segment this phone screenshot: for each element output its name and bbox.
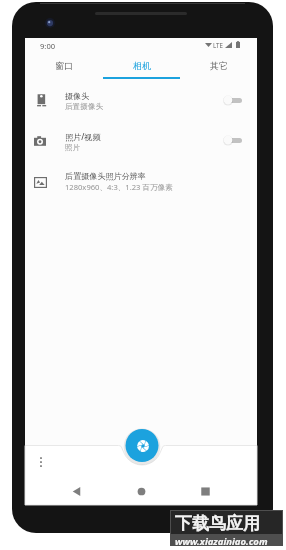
staticText: 摄像头	[65, 91, 90, 101]
button[interactable]: Toggle	[219, 90, 247, 110]
staticText: 窗口	[55, 60, 73, 71]
staticText: 9:00	[40, 41, 56, 51]
button[interactable]: Back	[65, 480, 87, 502]
button[interactable]: 相机	[103, 53, 180, 77]
button[interactable]: 摄像头	[25, 86, 257, 118]
button[interactable]: 后置摄像头照片分辨率	[25, 166, 257, 198]
staticText: 1280x960、4:3、1.23 百万像素	[65, 182, 173, 192]
staticText: 照片/视频	[65, 131, 101, 142]
button[interactable]: 其它	[180, 53, 257, 77]
button[interactable]: Home	[130, 480, 152, 502]
staticText: 照片	[65, 143, 81, 153]
button[interactable]: Recents	[194, 480, 216, 502]
staticText: 后置摄像头照片分辨率	[65, 171, 146, 181]
staticText: 后置摄像头	[65, 102, 103, 112]
button[interactable]: Toggle	[219, 130, 247, 150]
button[interactable]: Capture photo	[126, 429, 159, 462]
button[interactable]: 窗口	[25, 53, 103, 77]
staticText: www.xiazainiao.com	[175, 535, 268, 548]
staticText: 下载鸟应用	[175, 513, 260, 534]
staticText: 其它	[210, 60, 228, 71]
button[interactable]: More options	[31, 452, 51, 472]
button[interactable]: 照片/视频	[25, 126, 257, 158]
staticText: LTE	[213, 41, 223, 48]
staticText: 相机	[133, 60, 151, 71]
